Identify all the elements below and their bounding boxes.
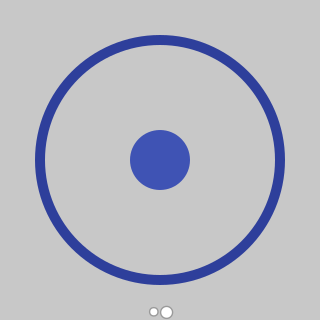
button[interactable]: Page 1 <box>150 308 158 316</box>
button[interactable]: Select <box>35 35 285 285</box>
button[interactable]: Page 2, current page <box>161 306 173 318</box>
